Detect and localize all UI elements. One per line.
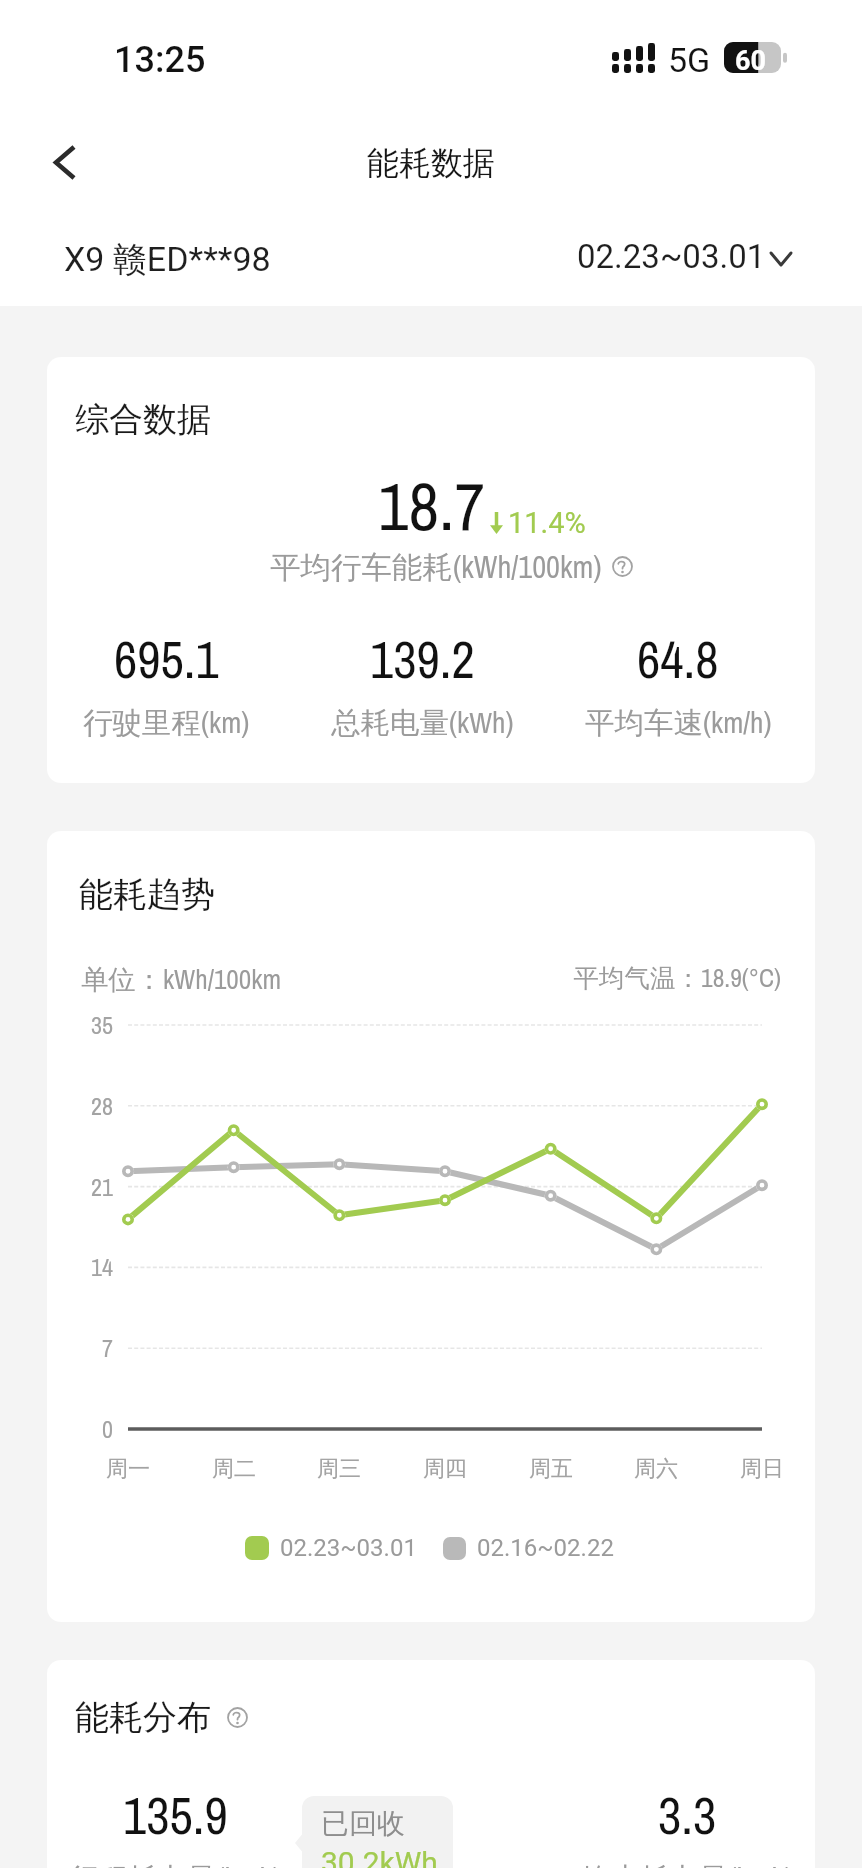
staticText: 行驶里程(km) bbox=[83, 702, 250, 742]
staticText: 能耗数据 bbox=[367, 143, 495, 183]
staticText: 28 bbox=[47, 1090, 113, 1122]
staticText: 13:25 bbox=[114, 39, 206, 81]
staticText: 周四 bbox=[423, 1455, 467, 1483]
staticText: 135.9 bbox=[123, 1781, 228, 1850]
staticText: 02.23~03.01 bbox=[280, 1534, 417, 1562]
staticText: 综合数据 bbox=[75, 398, 211, 441]
staticText: 周五 bbox=[529, 1455, 573, 1483]
staticText: 能耗趋势 bbox=[79, 873, 215, 916]
staticText: 平均车速(km/h) bbox=[585, 702, 772, 742]
staticText: 02.16~02.22 bbox=[477, 1534, 614, 1562]
staticText: 平均行车能耗(kWh/100km) bbox=[270, 546, 602, 587]
staticText: 35 bbox=[47, 1009, 113, 1041]
staticText: 总耗电量(kWh) bbox=[331, 702, 514, 742]
staticText: 周日 bbox=[740, 1455, 784, 1483]
staticText: 11.4% bbox=[508, 506, 586, 540]
staticText: 5G bbox=[668, 40, 711, 80]
staticText: 695.1 bbox=[114, 625, 219, 694]
staticText: 7 bbox=[47, 1332, 113, 1364]
staticText: 21 bbox=[47, 1171, 113, 1203]
staticText: 60 bbox=[735, 45, 766, 77]
staticText: 周一 bbox=[106, 1455, 150, 1483]
staticText: 14 bbox=[47, 1251, 113, 1283]
staticText: 139.2 bbox=[370, 625, 475, 694]
staticText: 3.3 bbox=[658, 1781, 717, 1850]
staticText: 0 bbox=[47, 1413, 113, 1445]
staticText: 30.2kWh bbox=[321, 1845, 438, 1868]
staticText: 能耗分布 bbox=[75, 1696, 211, 1739]
staticText: 周二 bbox=[212, 1455, 256, 1483]
staticText: 02.23~03.01 bbox=[577, 237, 766, 276]
staticText: 行程耗电量(kWh) bbox=[69, 1858, 281, 1868]
staticText: 已回收 bbox=[321, 1806, 405, 1841]
staticText: 18.7 bbox=[378, 461, 485, 551]
staticText: 静态耗电量(kWh) bbox=[581, 1858, 793, 1868]
staticText: 平均气温：18.9(°C) bbox=[47, 961, 781, 995]
staticText: 64.8 bbox=[637, 625, 719, 694]
staticText: 周六 bbox=[634, 1455, 678, 1483]
button[interactable]: Back bbox=[27, 117, 103, 207]
staticText: X9 赣ED***98 bbox=[64, 238, 271, 281]
button[interactable]: 02.23~03.01 bbox=[577, 237, 791, 276]
staticText: 单位：kWh/100km bbox=[81, 961, 282, 998]
staticText: 周三 bbox=[317, 1455, 361, 1483]
